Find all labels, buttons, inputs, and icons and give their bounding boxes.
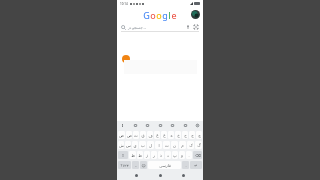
button[interactable]: Space: [148, 161, 181, 169]
staticText: چ: [198, 133, 201, 138]
staticText: l: [168, 9, 171, 21]
button[interactable]: Back: [133, 172, 140, 179]
staticText: ن: [173, 143, 176, 148]
staticText: ح: [184, 133, 187, 138]
staticText: ض: [119, 133, 124, 138]
button[interactable]: Toolbar action 7: [195, 123, 200, 128]
button[interactable]: ت: [163, 141, 170, 149]
staticText: ع: [163, 133, 166, 138]
staticText: G: [143, 9, 150, 21]
staticText: ،: [135, 163, 137, 168]
staticText: ⌫: [195, 153, 201, 158]
button[interactable]: م: [179, 141, 186, 149]
button[interactable]: ح: [182, 131, 188, 139]
button[interactable]: Backspace: [193, 151, 202, 159]
staticText: پ: [173, 153, 177, 158]
button[interactable]: Toolbar action 2: [133, 123, 138, 128]
button[interactable]: ع: [161, 131, 167, 139]
button[interactable]: Toolbar action 1: [120, 123, 125, 128]
staticText: .: [185, 163, 187, 168]
staticText: ث: [134, 133, 138, 138]
staticText: ☺: [141, 163, 146, 168]
button[interactable]: Google Lens: [193, 24, 199, 30]
button[interactable]: چ: [196, 131, 202, 139]
button[interactable]: ط: [137, 151, 143, 159]
button[interactable]: س: [125, 141, 131, 149]
button[interactable]: ر: [151, 151, 157, 159]
staticText: م: [181, 143, 184, 148]
staticText: ق: [141, 133, 145, 138]
staticText: ↵: [194, 163, 198, 168]
button[interactable]: ل: [147, 141, 154, 149]
button[interactable]: Account: [191, 10, 200, 19]
button[interactable]: Symbols: [118, 161, 131, 169]
staticText: ل: [149, 143, 152, 148]
button[interactable]: ک: [187, 141, 194, 149]
button[interactable]: خ: [175, 131, 181, 139]
staticText: ذ: [160, 153, 162, 158]
button[interactable]: و: [179, 151, 185, 159]
staticText: ر: [153, 153, 155, 158]
button[interactable]: غ: [154, 131, 160, 139]
button[interactable]: د: [165, 151, 171, 159]
button[interactable]: .: [186, 151, 192, 159]
staticText: ی: [133, 143, 137, 148]
button[interactable]: Recents: [180, 172, 187, 179]
staticText: ه: [170, 133, 173, 138]
staticText: ش: [119, 143, 124, 148]
button[interactable]: Voice search: [185, 24, 191, 30]
staticText: ظ: [131, 153, 135, 158]
button[interactable]: ف: [147, 131, 153, 139]
staticText: س: [126, 143, 131, 148]
staticText: 10:14: [120, 2, 128, 6]
staticText: غ: [156, 133, 159, 138]
staticText: .: [188, 153, 190, 158]
button[interactable]: ذ: [158, 151, 164, 159]
button[interactable]: ا: [155, 141, 162, 149]
button[interactable]: ی: [132, 141, 138, 149]
staticText: ب: [141, 143, 145, 148]
staticText: خ: [177, 133, 180, 138]
staticText: ⇧: [121, 153, 125, 158]
staticText: جستجو در ...: [128, 25, 147, 30]
button[interactable]: ث: [133, 131, 139, 139]
button[interactable]: Shift: [118, 151, 128, 159]
staticText: گ: [197, 143, 201, 148]
staticText: ط: [138, 153, 142, 158]
button[interactable]: ص: [126, 131, 132, 139]
button[interactable]: Toolbar action 6: [183, 123, 188, 128]
staticText: o: [150, 9, 156, 21]
button[interactable]: ه: [168, 131, 174, 139]
staticText: ا: [158, 143, 160, 148]
button[interactable]: ج: [189, 131, 195, 139]
staticText: و: [181, 153, 183, 158]
button[interactable]: جستجو در ...: [121, 21, 199, 32]
staticText: ?١٢٣: [120, 163, 129, 168]
staticText: ز: [146, 153, 148, 158]
button[interactable]: Toolbar action 5: [170, 123, 175, 128]
staticText: ف: [148, 133, 153, 138]
button[interactable]: ض: [118, 131, 125, 139]
staticText: o: [156, 9, 162, 21]
staticText: ص: [127, 133, 132, 138]
button[interactable]: ش: [118, 141, 124, 149]
staticText: د: [167, 153, 169, 158]
button[interactable]: پ: [172, 151, 178, 159]
staticText: فارسی: [159, 163, 171, 168]
button[interactable]: Home: [157, 172, 164, 179]
button[interactable]: ظ: [129, 151, 136, 159]
button[interactable]: Comma: [132, 161, 139, 169]
button[interactable]: Emoji: [140, 161, 147, 169]
button[interactable]: Toolbar action 4: [158, 123, 163, 128]
button[interactable]: Enter: [190, 161, 202, 169]
staticText: ک: [189, 143, 193, 148]
button[interactable]: ب: [139, 141, 146, 149]
button[interactable]: گ: [195, 141, 202, 149]
button[interactable]: Toolbar action 3: [145, 123, 150, 128]
staticText: ت: [165, 143, 169, 148]
staticText: e: [171, 9, 177, 21]
button[interactable]: ز: [144, 151, 150, 159]
button[interactable]: ق: [140, 131, 146, 139]
button[interactable]: ن: [171, 141, 178, 149]
